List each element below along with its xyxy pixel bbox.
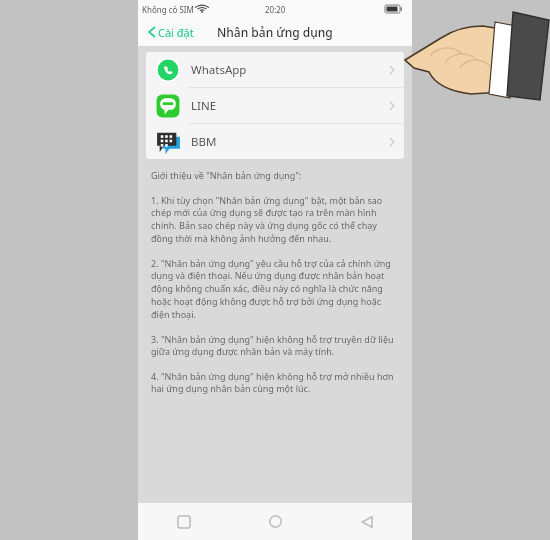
staticText: Cài đặt: [158, 25, 194, 40]
staticText: Không có SIM: [142, 4, 194, 15]
button[interactable]: BBM: [146, 124, 404, 159]
staticText: 20:20: [265, 4, 286, 15]
button[interactable]: LINE: [146, 88, 404, 123]
staticText: LINE: [191, 98, 217, 114]
button[interactable]: Back: [321, 503, 412, 540]
staticText: Nhân bản ứng dụng: [217, 24, 333, 40]
staticText: BBM: [191, 134, 217, 150]
staticText: Giới thiệu về "Nhân bản ứng dụng":: [151, 169, 302, 181]
staticText: WhatsApp: [191, 62, 247, 78]
button[interactable]: Home: [230, 503, 321, 540]
staticText: 1. Khi tùy chọn "Nhân bản ứng dụng" bật,…: [151, 194, 399, 245]
button[interactable]: WhatsApp: [146, 52, 404, 87]
staticText: 3. "Nhân bản ứng dụng" hiện không hỗ trợ…: [151, 333, 399, 358]
staticText: 2. "Nhân bản ứng dụng" yêu cầu hỗ trợ củ…: [151, 257, 399, 321]
button[interactable]: Recent apps: [138, 503, 230, 540]
button[interactable]: Cài đặt: [138, 18, 202, 46]
staticText: 4. "Nhân bản ứng dụng" hiện không hỗ trợ…: [151, 370, 399, 395]
